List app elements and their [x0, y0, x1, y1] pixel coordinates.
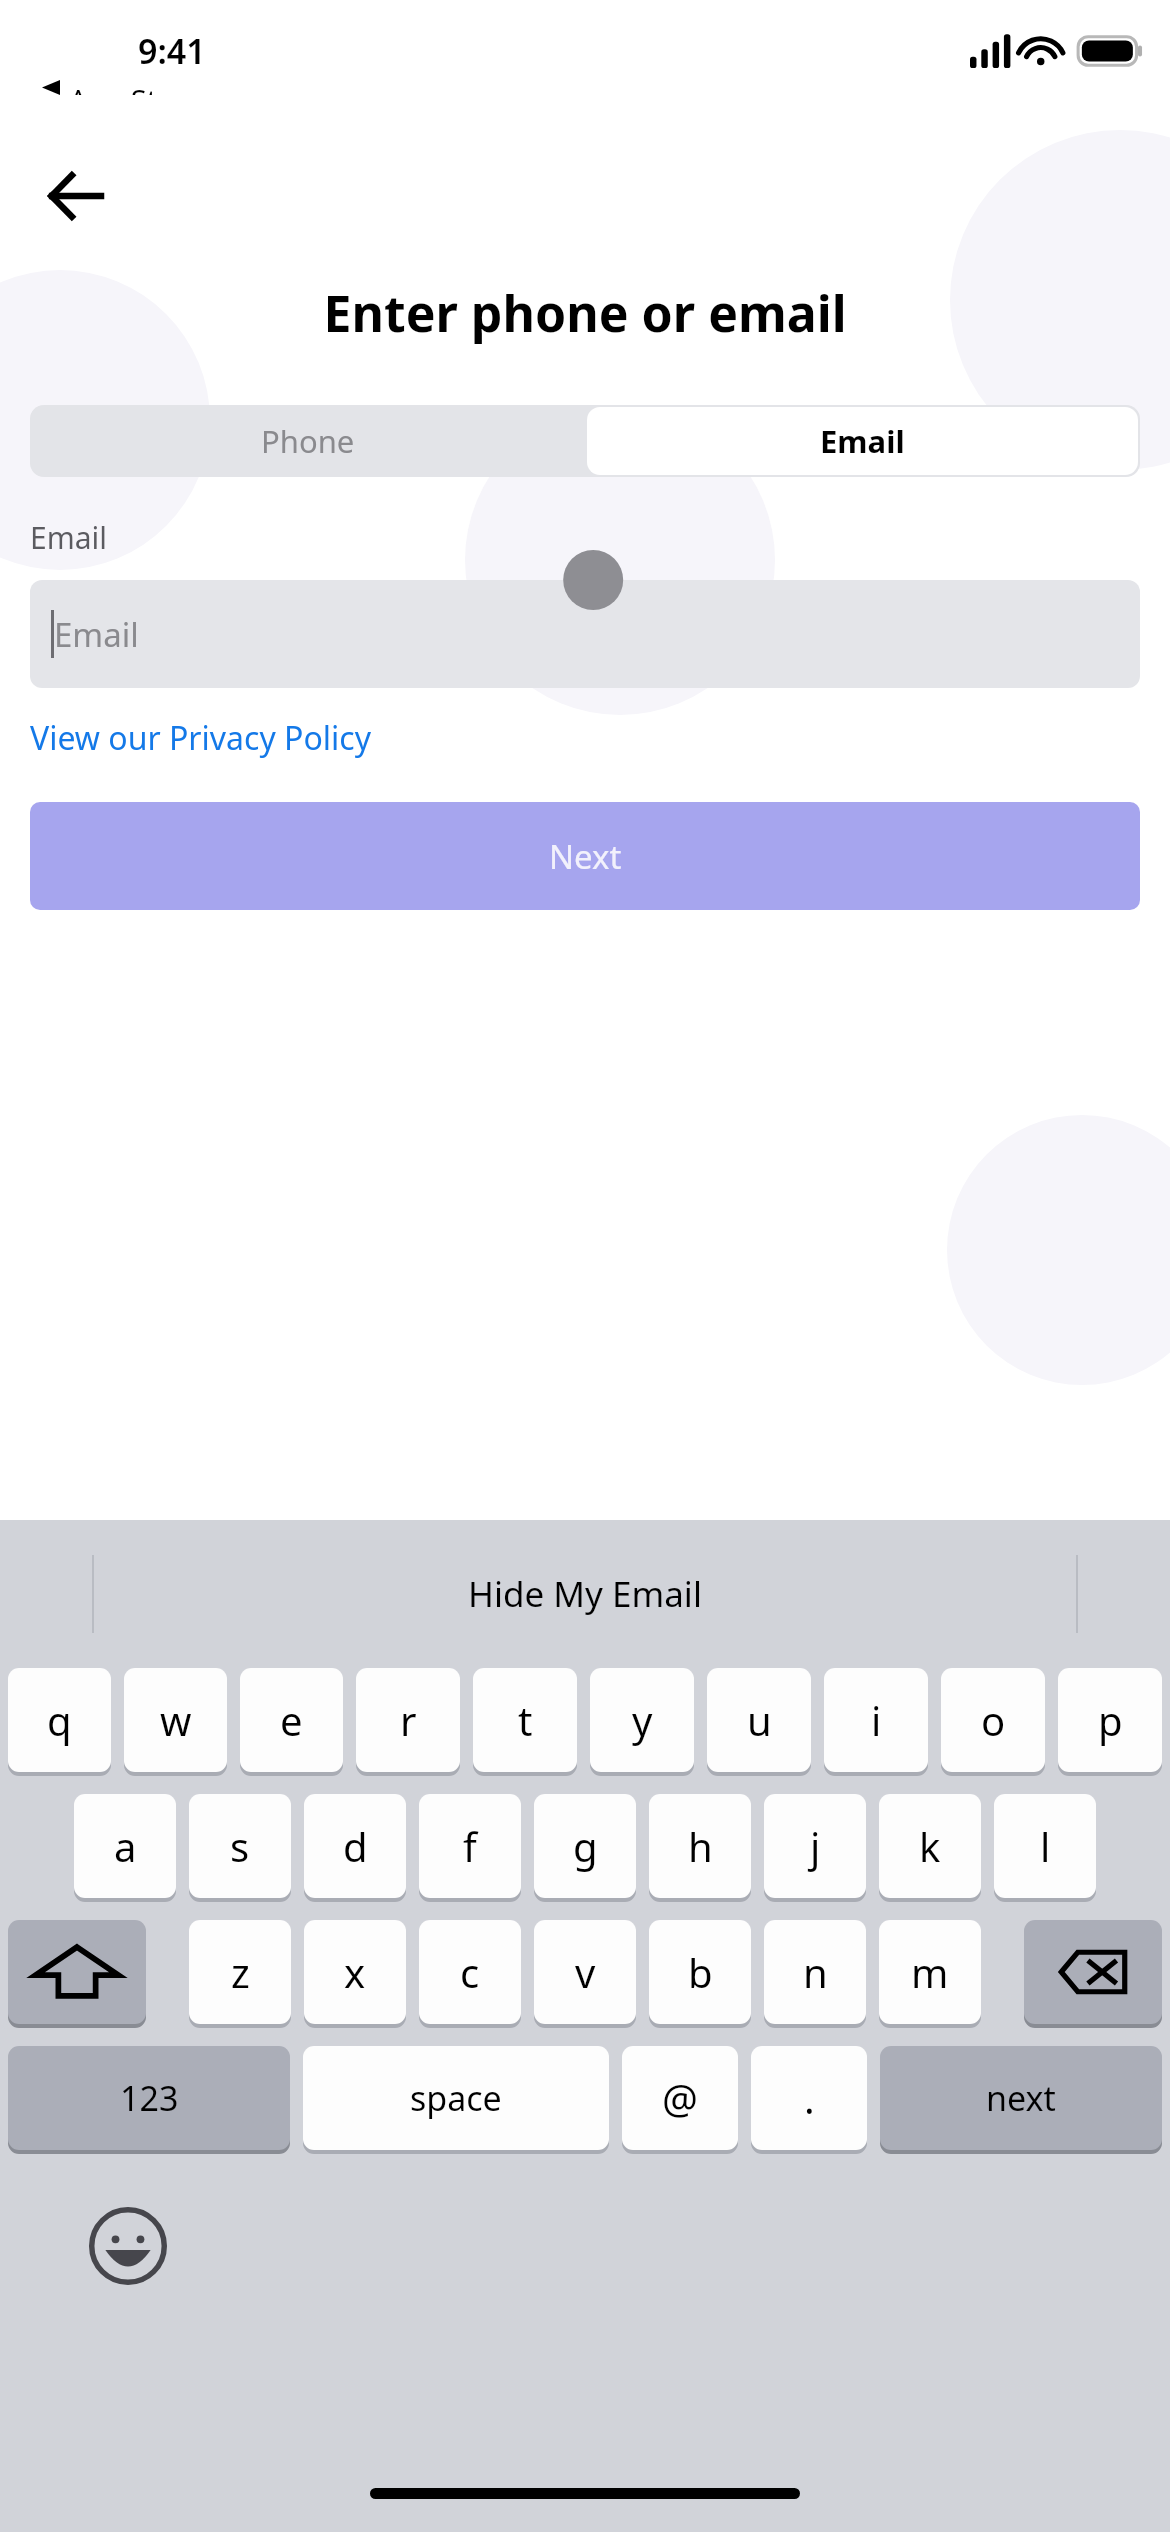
button[interactable]: x	[304, 1920, 406, 2028]
button[interactable]: j	[764, 1794, 866, 1902]
staticText: w	[160, 1693, 192, 1747]
staticText: f	[463, 1819, 477, 1873]
staticText: d	[343, 1819, 368, 1873]
button[interactable]: .	[751, 2046, 867, 2154]
staticText: s	[230, 1819, 250, 1873]
staticText: n	[803, 1945, 828, 1999]
staticText: l	[1040, 1819, 1051, 1873]
button[interactable]: Back	[30, 151, 120, 241]
staticText: u	[747, 1693, 772, 1747]
button[interactable]: 123	[8, 2046, 290, 2154]
staticText: t	[518, 1693, 533, 1747]
staticText: Enter phone or email	[0, 279, 1170, 347]
button[interactable]: u	[707, 1668, 811, 1776]
button[interactable]: next	[880, 2046, 1162, 2154]
button[interactable]: Hide My Email	[94, 1520, 1076, 1668]
staticText: Next	[549, 834, 622, 879]
staticText: h	[688, 1819, 713, 1873]
button[interactable]: Backspace	[1024, 1920, 1162, 2028]
button[interactable]: a	[74, 1794, 176, 1902]
button[interactable]: b	[649, 1920, 751, 2028]
staticText: next	[986, 2075, 1056, 2121]
button[interactable]: Emoji	[88, 2206, 168, 2286]
staticText: Email	[820, 420, 905, 462]
button[interactable]: h	[649, 1794, 751, 1902]
staticText: a	[114, 1819, 137, 1873]
staticText: e	[280, 1693, 303, 1747]
button[interactable]: Phone	[30, 405, 585, 477]
button[interactable]: t	[473, 1668, 577, 1776]
button[interactable]: f	[419, 1794, 521, 1902]
staticText: o	[981, 1693, 1006, 1747]
button[interactable]: s	[189, 1794, 291, 1902]
staticText: Hide My Email	[468, 1570, 702, 1618]
button[interactable]: n	[764, 1920, 866, 2028]
button[interactable]: space	[303, 2046, 609, 2154]
staticText: k	[919, 1819, 941, 1873]
button[interactable]: y	[590, 1668, 694, 1776]
staticText: Phone	[261, 420, 355, 462]
staticText: m	[911, 1945, 949, 1999]
button[interactable]: k	[879, 1794, 981, 1902]
button[interactable]: i	[824, 1668, 928, 1776]
staticText: Email	[30, 517, 108, 558]
button[interactable]: c	[419, 1920, 521, 2028]
staticText: View our Privacy Policy	[30, 716, 371, 760]
staticText: q	[47, 1693, 72, 1747]
button[interactable]: v	[534, 1920, 636, 2028]
staticText: 9:41	[138, 28, 206, 74]
staticText: v	[575, 1945, 596, 1999]
button[interactable]: l	[994, 1794, 1096, 1902]
staticText: App Store	[69, 80, 203, 95]
staticText: b	[688, 1945, 713, 1999]
button[interactable]: r	[356, 1668, 460, 1776]
button[interactable]: Email	[30, 580, 1140, 688]
staticText: j	[810, 1819, 821, 1873]
staticText: g	[573, 1819, 598, 1873]
button[interactable]: q	[8, 1668, 111, 1776]
staticText: c	[460, 1945, 480, 1999]
staticText: z	[231, 1945, 250, 1999]
staticText: p	[1098, 1693, 1123, 1747]
staticText: r	[400, 1693, 417, 1747]
staticText: space	[410, 2075, 502, 2121]
button[interactable]: p	[1058, 1668, 1162, 1776]
staticText: y	[632, 1693, 653, 1747]
button[interactable]: w	[124, 1668, 227, 1776]
button[interactable]: d	[304, 1794, 406, 1902]
staticText: 123	[120, 2075, 179, 2121]
button[interactable]: e	[240, 1668, 343, 1776]
button[interactable]: @	[622, 2046, 738, 2154]
button[interactable]: g	[534, 1794, 636, 1902]
button[interactable]: Shift	[8, 1920, 146, 2028]
button[interactable]: Email	[587, 407, 1138, 475]
button[interactable]: Next	[30, 802, 1140, 910]
button[interactable]: m	[879, 1920, 981, 2028]
staticText: .	[804, 2071, 815, 2125]
staticText: x	[344, 1945, 366, 1999]
button[interactable]: o	[941, 1668, 1045, 1776]
button[interactable]: z	[189, 1920, 291, 2028]
button[interactable]: App Store	[42, 80, 203, 95]
staticText: @	[662, 2071, 698, 2125]
staticText: Email	[54, 612, 139, 657]
button[interactable]: View our Privacy Policy	[30, 716, 371, 760]
staticText: i	[871, 1693, 882, 1747]
